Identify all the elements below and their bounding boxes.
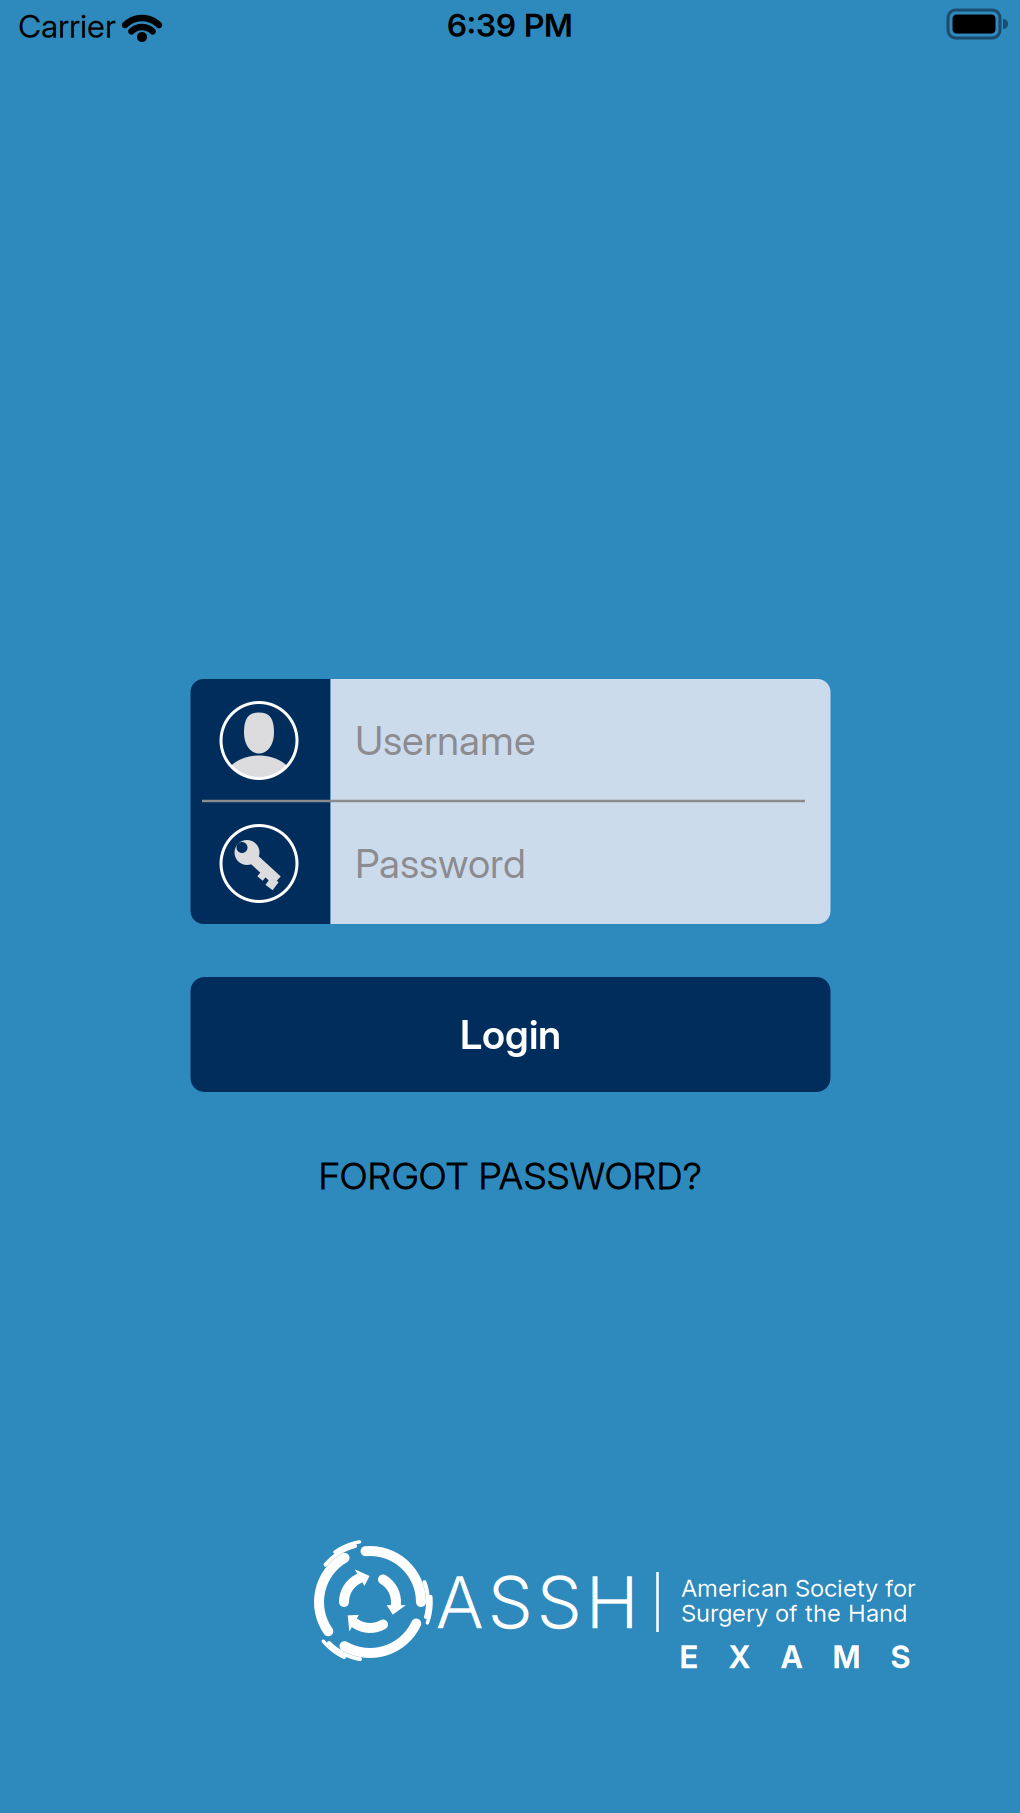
staticText: Username bbox=[355, 717, 536, 764]
staticText: Surgery of the Hand bbox=[681, 1599, 907, 1627]
staticText: ASSH bbox=[435, 1559, 638, 1644]
staticText: M bbox=[832, 1639, 860, 1675]
staticText: Password bbox=[355, 840, 526, 887]
staticText: FORGOT PASSWORD? bbox=[318, 1154, 701, 1198]
staticText: Carrier bbox=[18, 7, 116, 45]
staticText: X bbox=[728, 1639, 750, 1675]
staticText: American Society for bbox=[681, 1574, 916, 1602]
button[interactable] bbox=[190, 802, 830, 923]
button[interactable]: FORGOT PASSWORD? bbox=[318, 1154, 701, 1198]
button[interactable] bbox=[190, 679, 830, 800]
staticText: E bbox=[679, 1639, 698, 1675]
button[interactable]: Login bbox=[190, 977, 830, 1092]
staticText: 6:39 PM bbox=[447, 6, 573, 44]
staticText: S bbox=[890, 1639, 910, 1675]
staticText: Login bbox=[460, 1011, 561, 1058]
staticText: A bbox=[780, 1639, 802, 1675]
